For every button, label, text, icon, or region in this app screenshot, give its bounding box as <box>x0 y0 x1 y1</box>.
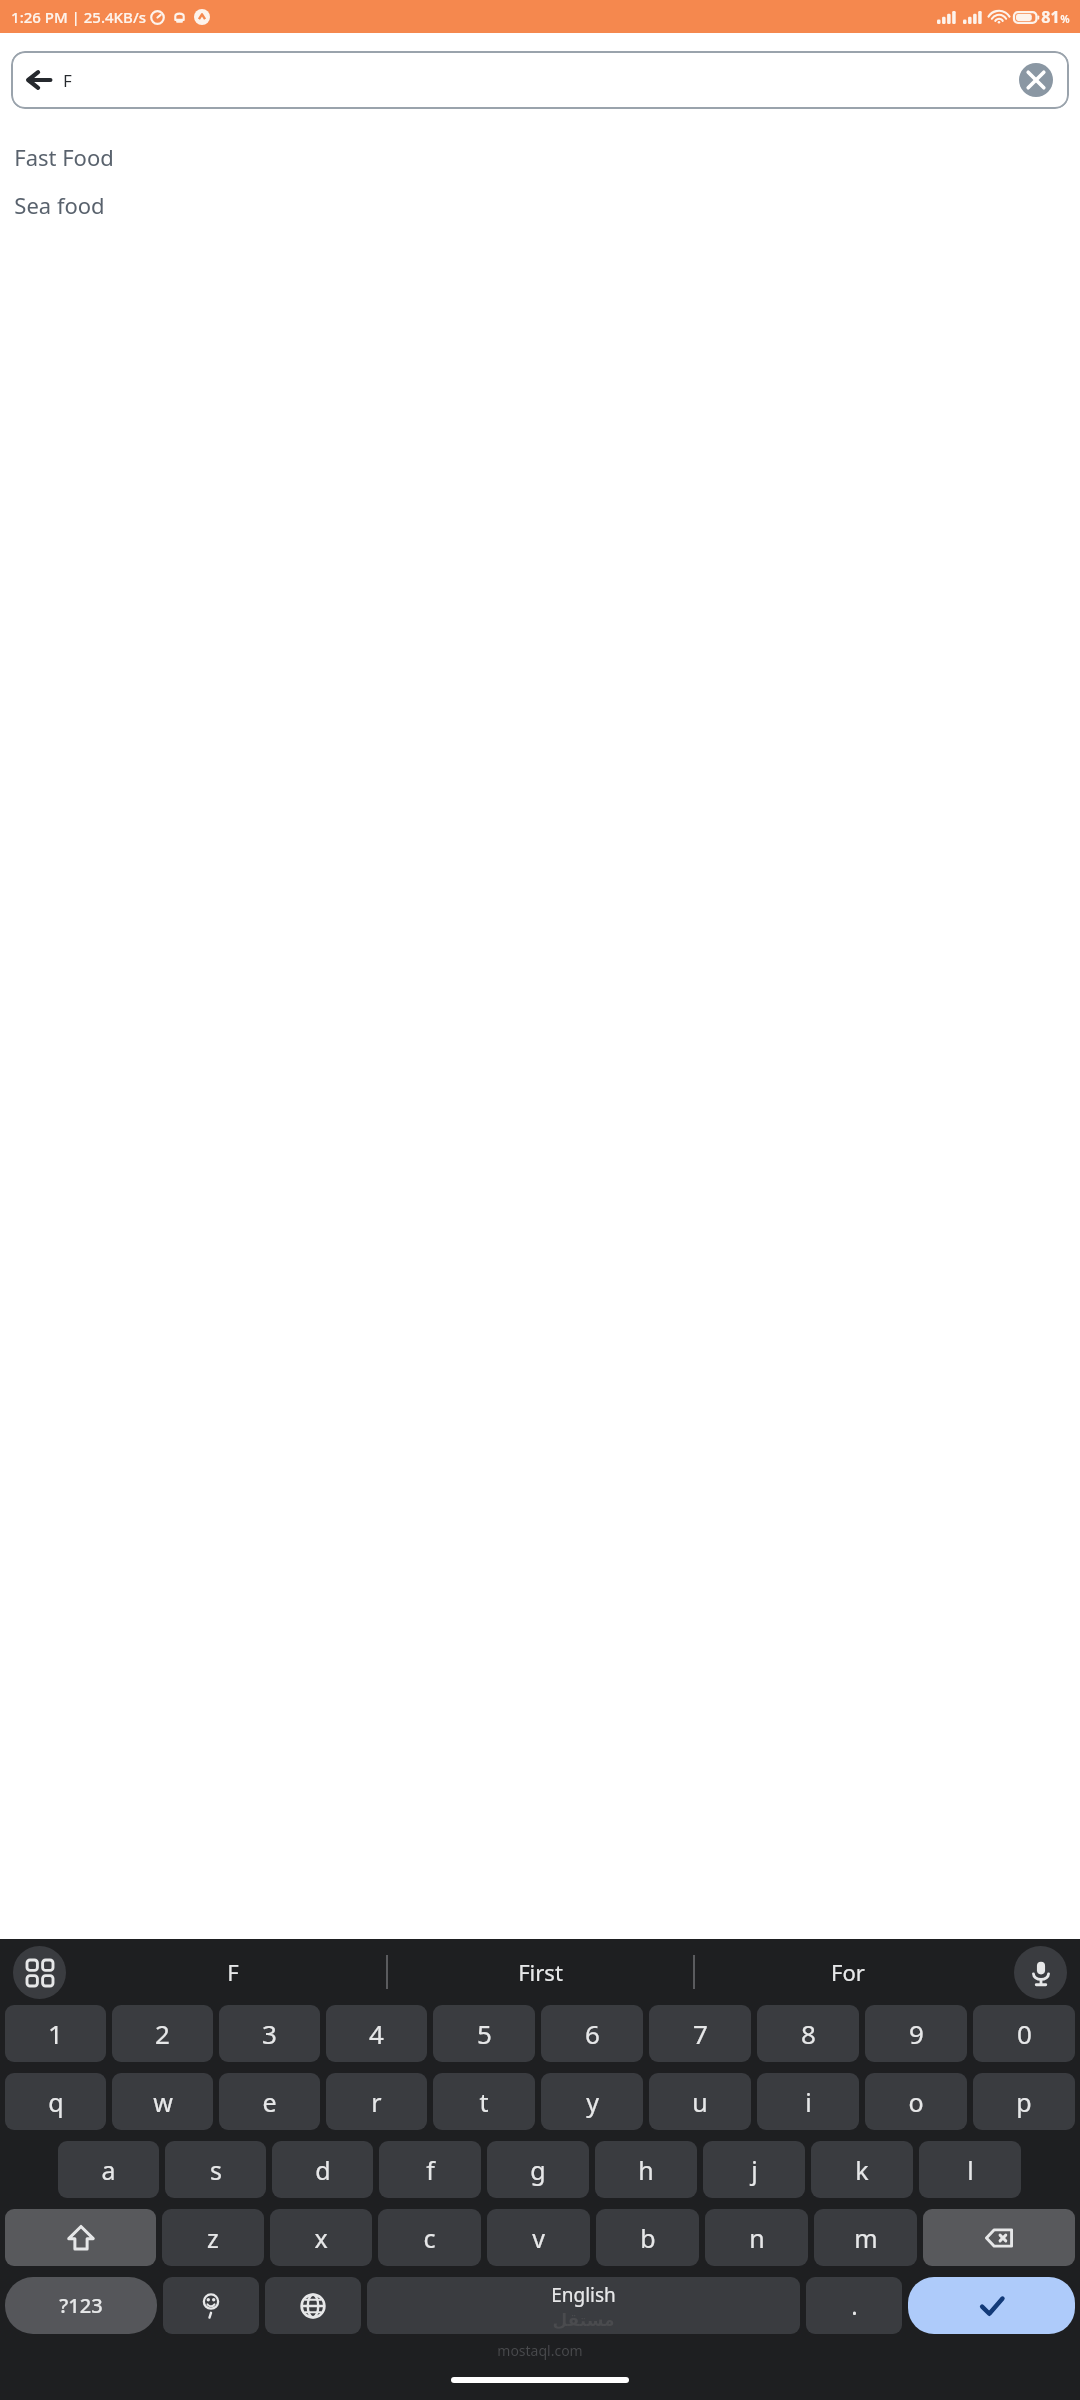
button[interactable]: y <box>541 2073 643 2130</box>
button[interactable]: h <box>595 2141 697 2198</box>
staticText: For <box>831 1957 865 1987</box>
staticText: 4 <box>369 2016 384 2051</box>
button[interactable]: k <box>811 2141 913 2198</box>
button[interactable]: 0 <box>973 2005 1075 2062</box>
button[interactable]: 6 <box>541 2005 643 2062</box>
button[interactable]: c <box>378 2209 481 2266</box>
button[interactable]: e <box>219 2073 320 2130</box>
staticText: l <box>967 2153 974 2187</box>
staticText: 5 <box>477 2016 492 2051</box>
staticText: 7 <box>693 2016 708 2051</box>
button[interactable]: 3 <box>219 2005 320 2062</box>
button[interactable]: Shift <box>5 2209 156 2266</box>
staticText: mostaql.com <box>497 2341 583 2360</box>
staticText: z <box>207 2221 219 2255</box>
button[interactable]: w <box>112 2073 213 2130</box>
staticText: e <box>262 2085 277 2119</box>
staticText: 2 <box>155 2016 170 2051</box>
staticText: 0 <box>1017 2016 1032 2051</box>
button[interactable]: Emoji <box>163 2277 259 2334</box>
button[interactable]: v <box>487 2209 590 2266</box>
staticText: مستقل <box>552 2310 615 2330</box>
staticText: F <box>63 69 72 92</box>
staticText: English <box>551 2282 616 2308</box>
button[interactable]: r <box>326 2073 427 2130</box>
button[interactable]: English <box>367 2277 800 2334</box>
staticText: . <box>851 2289 858 2322</box>
staticText: Sea food <box>14 190 105 220</box>
staticText: f <box>426 2153 435 2187</box>
button[interactable]: 5 <box>433 2005 535 2062</box>
staticText: n <box>749 2221 765 2255</box>
button[interactable]: Backspace <box>923 2209 1075 2266</box>
staticText: i <box>805 2085 812 2119</box>
staticText: o <box>908 2085 924 2119</box>
button[interactable]: Enter <box>908 2277 1075 2334</box>
staticText: 3 <box>262 2016 277 2051</box>
button[interactable]: Clear search <box>1019 63 1053 97</box>
button[interactable]: For <box>695 1944 1000 2000</box>
button[interactable]: o <box>865 2073 967 2130</box>
button[interactable]: f <box>379 2141 481 2198</box>
button[interactable]: q <box>5 2073 106 2130</box>
button[interactable]: Back <box>11 51 1069 109</box>
button[interactable]: First <box>388 1944 693 2000</box>
button[interactable]: j <box>703 2141 805 2198</box>
staticText: t <box>479 2085 489 2119</box>
staticText: 1 <box>48 2016 63 2051</box>
staticText: s <box>210 2153 222 2187</box>
button[interactable]: Voice input <box>1014 1946 1067 1999</box>
button[interactable]: 2 <box>112 2005 213 2062</box>
button[interactable]: 1 <box>5 2005 106 2062</box>
staticText: k <box>855 2153 869 2187</box>
staticText: p <box>1016 2085 1032 2119</box>
button[interactable]: Change language <box>265 2277 361 2334</box>
button[interactable]: d <box>272 2141 373 2198</box>
staticText: c <box>423 2221 436 2255</box>
staticText: 6 <box>585 2016 600 2051</box>
button[interactable]: i <box>757 2073 859 2130</box>
button[interactable]: a <box>58 2141 159 2198</box>
staticText: % <box>1060 12 1070 26</box>
button[interactable]: 9 <box>865 2005 967 2062</box>
button[interactable]: b <box>596 2209 699 2266</box>
button[interactable]: 4 <box>326 2005 427 2062</box>
staticText: j <box>751 2153 758 2187</box>
button[interactable]: t <box>433 2073 535 2130</box>
staticText: 8 <box>801 2016 816 2051</box>
staticText: 1:26 PM | 25.4KB/s <box>11 7 146 27</box>
button[interactable]: . <box>806 2277 902 2334</box>
staticText: g <box>530 2153 546 2187</box>
button[interactable]: m <box>814 2209 917 2266</box>
staticText: 9 <box>909 2016 924 2051</box>
button[interactable]: n <box>705 2209 808 2266</box>
button[interactable]: Keyboard toolbar <box>13 1946 66 1999</box>
button[interactable]: 7 <box>649 2005 751 2062</box>
staticText: First <box>518 1957 563 1987</box>
staticText: w <box>153 2085 173 2119</box>
button[interactable]: s <box>165 2141 266 2198</box>
button[interactable]: z <box>162 2209 264 2266</box>
button[interactable]: l <box>919 2141 1021 2198</box>
button[interactable]: x <box>270 2209 372 2266</box>
staticText: ?123 <box>59 2292 103 2319</box>
staticText: h <box>638 2153 654 2187</box>
button[interactable]: p <box>973 2073 1075 2130</box>
staticText: a <box>101 2153 116 2187</box>
button[interactable]: Fast Food <box>0 133 1080 181</box>
button[interactable]: Back <box>24 65 54 95</box>
button[interactable]: g <box>487 2141 589 2198</box>
staticText: q <box>48 2085 64 2119</box>
staticText: x <box>314 2221 328 2255</box>
staticText: y <box>586 2085 599 2119</box>
button[interactable]: Sea food <box>0 181 1080 229</box>
button[interactable]: u <box>649 2073 751 2130</box>
button[interactable]: 8 <box>757 2005 859 2062</box>
staticText: 81 <box>1041 6 1060 28</box>
staticText: u <box>692 2085 708 2119</box>
staticText: r <box>371 2085 382 2119</box>
button[interactable]: ?123 <box>5 2277 157 2334</box>
button[interactable]: F <box>80 1944 386 2000</box>
staticText: d <box>315 2153 331 2187</box>
staticText: v <box>532 2221 545 2255</box>
